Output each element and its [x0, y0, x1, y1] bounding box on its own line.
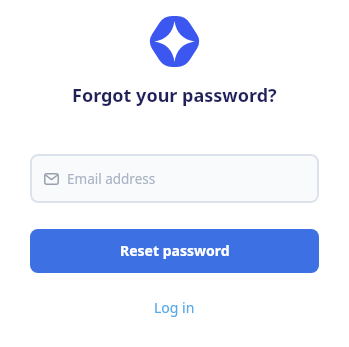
staticText: Log in — [154, 298, 195, 317]
staticText: Forgot your password? — [72, 83, 277, 108]
button[interactable]: Reset password — [30, 229, 319, 273]
button[interactable]: Email address — [30, 154, 319, 203]
staticText: Email address — [67, 170, 156, 188]
staticText: Reset password — [120, 241, 230, 260]
button[interactable]: Log in — [150, 294, 199, 321]
